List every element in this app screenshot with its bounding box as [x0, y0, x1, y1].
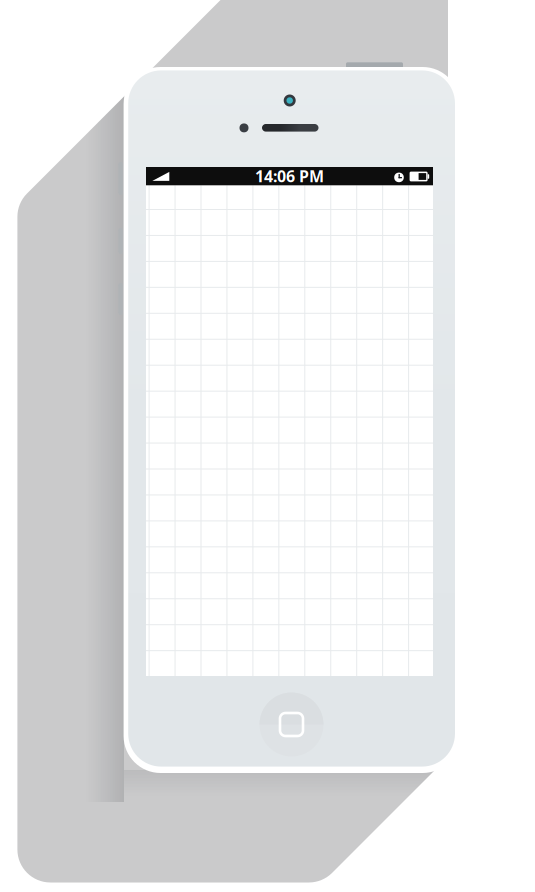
- staticText: 14:06 PM: [255, 165, 324, 187]
